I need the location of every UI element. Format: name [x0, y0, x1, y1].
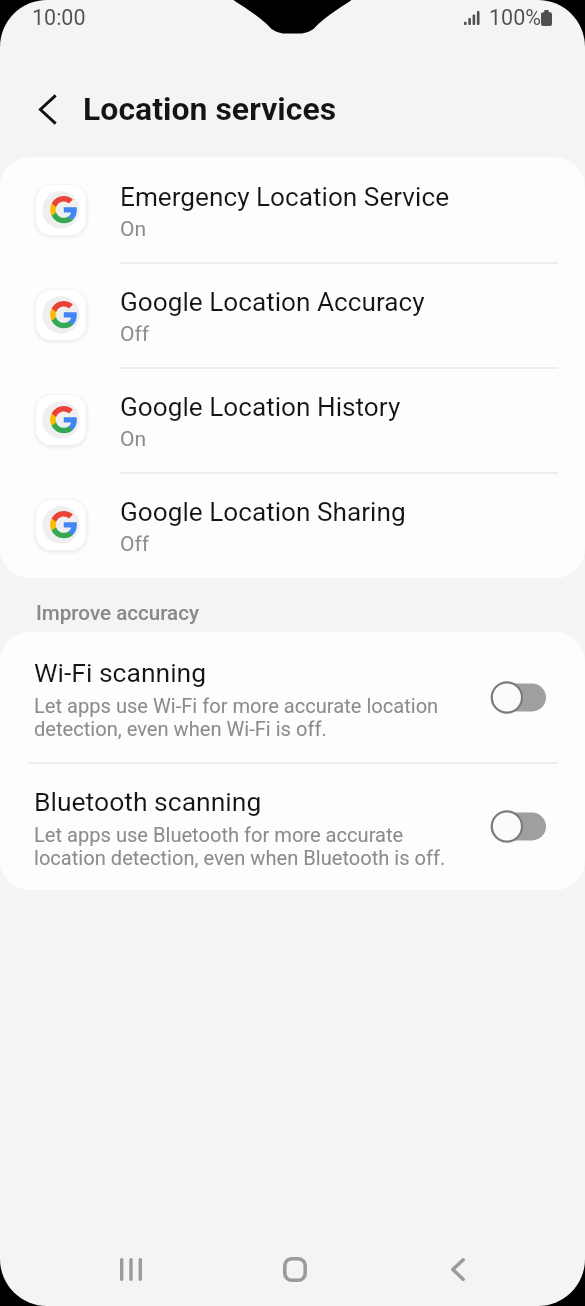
- staticText: Off: [120, 322, 150, 347]
- staticText: On: [120, 217, 147, 242]
- button[interactable]: Wi-Fi scanning: [0, 632, 585, 762]
- staticText: Google Location Accuracy: [120, 287, 425, 318]
- staticText: Off: [120, 532, 150, 557]
- button[interactable]: Off: [490, 681, 546, 714]
- staticText: Let apps use Wi-Fi for more accurate loc…: [34, 695, 439, 741]
- button[interactable]: Google Location Accuracy: [0, 262, 585, 367]
- staticText: Location services: [83, 90, 337, 128]
- button[interactable]: Navigate up: [19, 81, 75, 137]
- staticText: Emergency Location Service: [120, 182, 450, 213]
- button[interactable]: Recent apps: [77, 1215, 185, 1306]
- staticText: Google Location History: [120, 392, 401, 423]
- staticText: Let apps use Bluetooth for more accurate…: [34, 824, 446, 870]
- staticText: 100%: [489, 5, 541, 30]
- staticText: Google Location Sharing: [120, 497, 406, 528]
- button[interactable]: Home: [241, 1215, 349, 1306]
- button[interactable]: Google Location History: [0, 367, 585, 472]
- button[interactable]: Emergency Location Service: [0, 157, 585, 262]
- staticText: On: [120, 427, 147, 452]
- staticText: 10:00: [32, 5, 86, 30]
- button[interactable]: Bluetooth scanning: [0, 762, 585, 890]
- staticText: Improve accuracy: [36, 601, 200, 625]
- button[interactable]: Google Location Sharing: [0, 472, 585, 577]
- button[interactable]: Back: [404, 1215, 512, 1306]
- staticText: Bluetooth scanning: [34, 786, 262, 817]
- button[interactable]: Off: [490, 810, 546, 843]
- staticText: Wi-Fi scanning: [34, 657, 207, 688]
